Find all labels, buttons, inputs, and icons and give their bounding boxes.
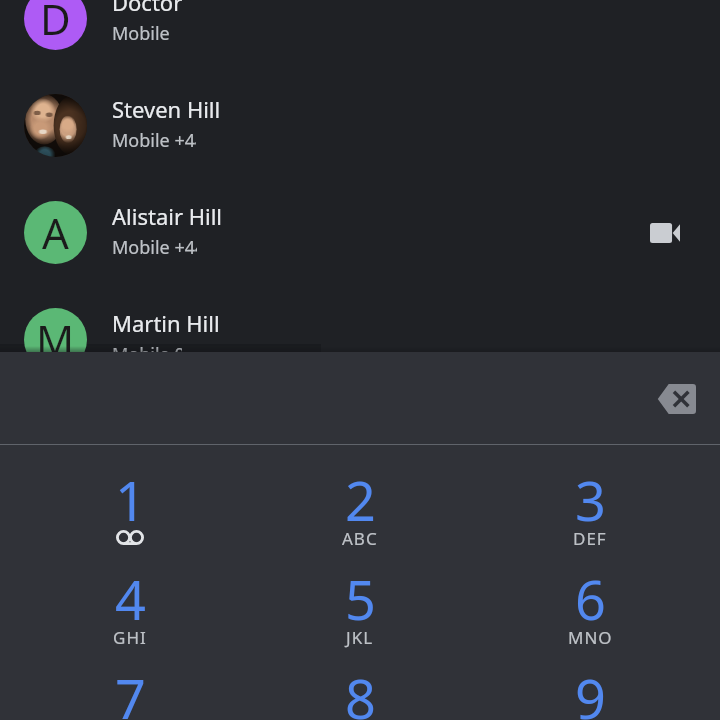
button[interactable]: 8 [245,632,475,720]
staticText: 1 [115,463,146,537]
staticText: D [40,0,71,47]
staticText: JKL [346,626,374,649]
staticText: ABC [342,527,378,550]
staticText: Martin Hill [112,308,220,338]
staticText: Mobile [112,21,170,43]
button[interactable]: Phone number field [0,352,720,444]
button[interactable]: Backspace [648,371,704,427]
button[interactable]: A [0,180,720,287]
staticText: M [36,311,75,368]
button[interactable]: 7 [15,632,245,720]
staticText: Mobile 07 [112,342,182,364]
staticText: 2 [345,463,376,537]
staticText: MNO [568,626,613,649]
staticText: 7 [115,661,146,720]
staticText: Doctor [112,0,183,17]
staticText: GHI [113,626,147,649]
button[interactable]: 4 [15,533,245,663]
button[interactable]: Video call [640,208,690,258]
button[interactable]: Steven Hill [0,73,720,180]
button[interactable]: 5 [245,533,475,663]
button[interactable]: 2 [245,434,475,564]
staticText: 9 [575,661,606,720]
staticText: Mobile +44 [112,128,196,150]
staticText: 5 [345,562,376,636]
staticText: Steven Hill [112,94,221,124]
button[interactable]: 9 [475,632,705,720]
staticText: Alistair Hill [112,201,223,231]
staticText: DEF [573,527,607,550]
button[interactable]: D [0,0,720,73]
staticText: Mobile +44 [112,235,197,257]
staticText: 3 [575,463,606,537]
button[interactable]: 3 [475,434,705,564]
staticText: 4 [115,562,146,636]
button[interactable]: 6 [475,533,705,663]
staticText: 8 [345,661,376,720]
button[interactable]: 1 [15,434,245,564]
staticText: 6 [575,562,606,636]
staticText: A [42,204,69,261]
button[interactable]: M [0,287,720,394]
